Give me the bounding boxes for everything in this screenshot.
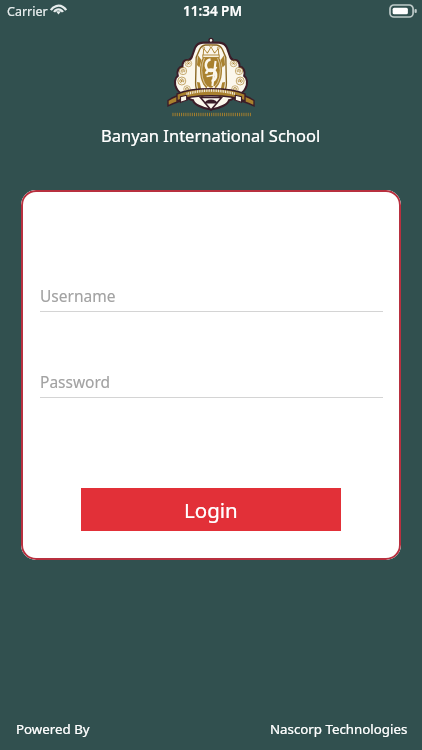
staticText: Nascorp Technologies — [270, 720, 408, 738]
staticText: Username — [40, 285, 116, 306]
button[interactable]: Password — [40, 371, 383, 398]
staticText: 11:34 PM — [183, 2, 242, 20]
staticText: Carrier — [7, 3, 48, 20]
staticText: Password — [40, 371, 111, 392]
staticText: Login — [184, 496, 238, 524]
staticText: Banyan International School — [101, 124, 321, 146]
staticText: Powered By — [16, 720, 90, 738]
button[interactable]: Username — [40, 285, 383, 312]
button[interactable]: Login — [81, 488, 341, 531]
